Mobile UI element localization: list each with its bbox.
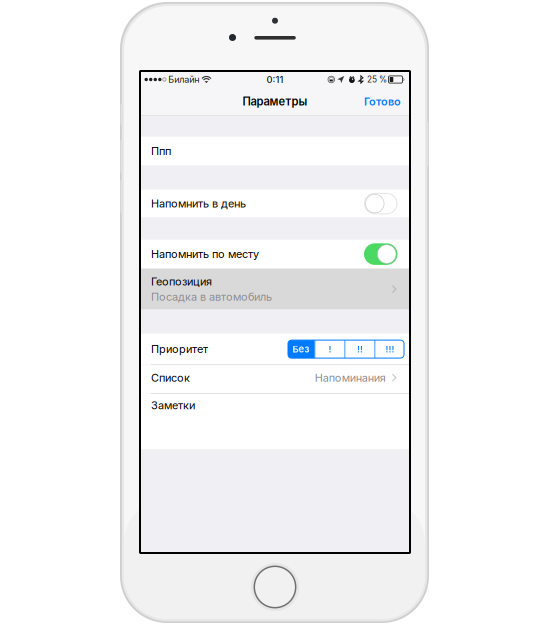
staticText: Список	[151, 371, 190, 384]
button[interactable]: !!	[345, 340, 374, 358]
button[interactable]: Ппп	[140, 137, 410, 166]
staticText: Геопозиция	[151, 275, 212, 288]
button[interactable]: Напомнить по месту	[140, 240, 410, 269]
button[interactable]: Готово	[356, 88, 410, 115]
staticText: Без	[292, 343, 309, 355]
button[interactable]: Заметки	[140, 394, 410, 449]
staticText: Билайн	[168, 74, 199, 85]
staticText: 25 %	[367, 74, 387, 84]
button[interactable]: !	[315, 340, 344, 358]
staticText: !!	[357, 343, 363, 355]
button[interactable]: Приоритет	[140, 334, 410, 365]
button[interactable]: Без	[287, 340, 314, 358]
staticText: Посадка в автомобиль	[151, 290, 272, 303]
button[interactable]: !!!	[375, 340, 404, 358]
staticText: !!!	[385, 343, 394, 355]
staticText: 0:11	[266, 74, 283, 85]
staticText: Напомнить в день	[151, 197, 246, 210]
staticText: Напомнить по месту	[151, 247, 259, 261]
staticText: Готово	[364, 95, 401, 108]
staticText: Напоминания	[315, 371, 386, 384]
staticText: Параметры	[242, 95, 307, 108]
button[interactable]: Список	[140, 365, 410, 393]
button[interactable]: Напомнить в день	[140, 190, 410, 218]
staticText: Заметки	[151, 399, 195, 412]
staticText: !	[328, 343, 331, 355]
staticText: Ппп	[151, 144, 171, 158]
button[interactable]: Геопозиция	[140, 269, 410, 310]
staticText: Приоритет	[151, 342, 208, 356]
